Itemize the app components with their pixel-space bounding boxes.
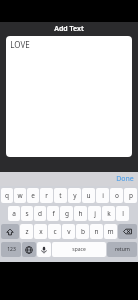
staticText: m xyxy=(107,227,114,236)
button[interactable]: w xyxy=(14,188,26,203)
staticText: e xyxy=(31,191,35,200)
button[interactable]: r xyxy=(40,188,53,203)
button[interactable]: j xyxy=(88,206,101,221)
staticText: return xyxy=(115,246,130,253)
button[interactable]: p xyxy=(124,188,137,203)
button[interactable]: Shift xyxy=(1,224,19,239)
button[interactable]: LOVE xyxy=(6,36,132,157)
button[interactable]: return xyxy=(107,242,137,257)
staticText: y xyxy=(73,191,77,200)
staticText: a xyxy=(12,209,16,218)
button[interactable]: x xyxy=(34,224,47,239)
staticText: LOVE xyxy=(10,39,30,50)
button[interactable]: m xyxy=(104,224,117,239)
staticText: o xyxy=(115,191,119,200)
staticText: k xyxy=(107,209,111,218)
button[interactable]: k xyxy=(102,206,115,221)
button[interactable]: q xyxy=(1,188,13,203)
button[interactable]: l xyxy=(116,206,129,221)
button[interactable]: 123 xyxy=(1,242,21,257)
staticText: c xyxy=(53,227,57,236)
staticText: d xyxy=(38,209,42,218)
button[interactable]: Change keyboard xyxy=(22,242,36,257)
staticText: Done xyxy=(116,174,134,184)
staticText: n xyxy=(94,227,99,236)
staticText: l xyxy=(122,209,124,218)
staticText: f xyxy=(52,209,55,218)
staticText: z xyxy=(25,227,29,236)
button[interactable]: t xyxy=(54,188,67,203)
staticText: Add Text xyxy=(54,24,84,34)
staticText: g xyxy=(65,209,69,218)
staticText: v xyxy=(67,227,71,236)
staticText: u xyxy=(86,191,91,200)
button[interactable]: i xyxy=(96,188,109,203)
button[interactable]: Dictation xyxy=(37,242,51,257)
staticText: x xyxy=(39,227,43,236)
button[interactable]: c xyxy=(48,224,61,239)
button[interactable]: z xyxy=(20,224,33,239)
staticText: r xyxy=(45,191,48,200)
button[interactable]: o xyxy=(110,188,123,203)
staticText: space xyxy=(72,246,86,253)
staticText: h xyxy=(78,209,83,218)
button[interactable]: h xyxy=(74,206,87,221)
button[interactable]: s xyxy=(21,206,33,221)
button[interactable]: n xyxy=(90,224,103,239)
button[interactable]: a xyxy=(8,206,20,221)
staticText: b xyxy=(81,227,85,236)
staticText: w xyxy=(17,191,23,200)
button[interactable]: d xyxy=(34,206,46,221)
button[interactable]: b xyxy=(76,224,89,239)
button[interactable]: v xyxy=(62,224,75,239)
staticText: i xyxy=(102,191,104,200)
button[interactable]: f xyxy=(47,206,59,221)
button[interactable]: Backspace xyxy=(118,224,137,239)
button[interactable]: u xyxy=(82,188,95,203)
button[interactable]: y xyxy=(68,188,81,203)
button[interactable]: g xyxy=(60,206,73,221)
staticText: j xyxy=(94,209,96,218)
button[interactable]: space xyxy=(52,242,106,257)
staticText: s xyxy=(25,209,29,218)
staticText: t xyxy=(59,191,62,200)
button[interactable]: e xyxy=(27,188,39,203)
staticText: q xyxy=(5,191,9,200)
staticText: 123 xyxy=(7,246,16,253)
staticText: p xyxy=(129,191,133,200)
button[interactable]: Done xyxy=(116,174,134,184)
